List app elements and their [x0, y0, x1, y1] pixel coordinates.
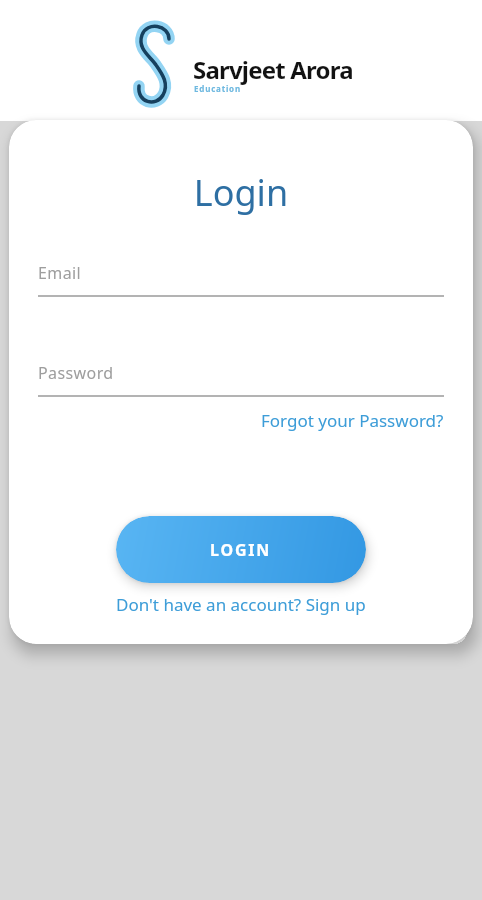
button[interactable]: Don't have an account? Sign up: [116, 593, 366, 616]
staticText: Sarvjeet Arora: [193, 53, 353, 86]
staticText: Forgot your Password?: [261, 409, 444, 432]
staticText: Login: [9, 168, 473, 217]
staticText: Email: [38, 262, 82, 284]
staticText: Don't have an account? Sign up: [116, 593, 366, 616]
button[interactable]: LOGIN: [116, 516, 366, 583]
button[interactable]: Forgot your Password?: [261, 409, 444, 432]
staticText: Education: [194, 83, 241, 94]
staticText: LOGIN: [210, 539, 272, 561]
staticText: Password: [38, 362, 114, 384]
